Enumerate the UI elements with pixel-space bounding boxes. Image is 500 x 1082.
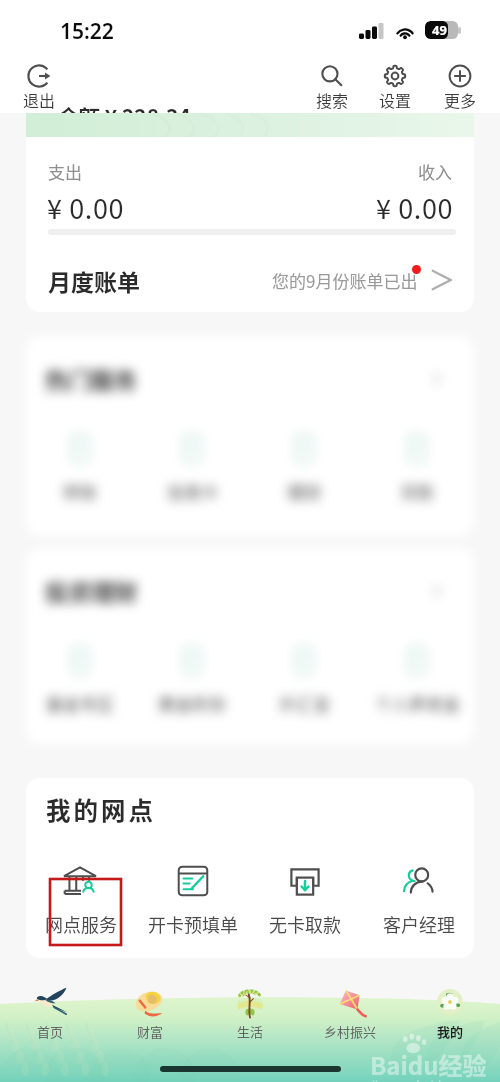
button[interactable]: 生活: [200, 985, 300, 1043]
staticText: 网点服务: [45, 911, 117, 937]
button[interactable]: 我的: [400, 985, 500, 1043]
button[interactable]: 客户经理: [369, 864, 469, 937]
staticText: 黄金积存: [158, 691, 226, 716]
staticText: ¥ 0.00: [47, 188, 125, 227]
staticText: 余额 ¥ 228.34: [58, 101, 191, 113]
staticText: 支出: [48, 159, 82, 184]
staticText: 基金专区: [46, 691, 114, 716]
button[interactable]: Exit: [13, 65, 65, 111]
staticText: 收入: [418, 159, 452, 184]
button[interactable]: 无卡取款: [255, 864, 355, 937]
staticText: 搜索: [316, 88, 349, 111]
staticText: 投资理财: [45, 574, 137, 607]
staticText: 月度账单: [48, 264, 140, 297]
staticText: 客户经理: [383, 911, 455, 937]
staticText: 开卡预填单: [148, 911, 238, 937]
button[interactable]: 开卡预填单: [143, 864, 243, 937]
staticText: 设置: [379, 88, 412, 111]
staticText: Baidu经验: [370, 1047, 487, 1082]
button[interactable]: Settings: [369, 65, 421, 111]
staticText: 我的网点: [46, 792, 156, 827]
staticText: 个人养老金: [375, 691, 460, 716]
button[interactable]: 网点服务: [31, 864, 131, 937]
button[interactable]: 财富: [100, 985, 200, 1043]
staticText: 乡村振兴: [324, 1022, 377, 1041]
button[interactable]: 月度账单: [26, 255, 474, 305]
staticText: 您的9月份账单已出: [272, 268, 418, 293]
button[interactable]: 首页: [0, 985, 100, 1043]
button[interactable]: 乡村振兴: [300, 985, 400, 1043]
staticText: 首页: [37, 1022, 64, 1041]
staticText: 信用卡: [167, 479, 218, 504]
staticText: 转账: [63, 479, 97, 504]
staticText: 退出: [23, 88, 56, 111]
staticText: 财富: [137, 1022, 164, 1041]
button[interactable]: Search: [306, 65, 358, 111]
staticText: 外汇宝: [279, 691, 330, 716]
staticText: 49: [432, 21, 447, 39]
staticText: 热门服务: [45, 362, 137, 395]
staticText: 贷款: [400, 479, 434, 504]
staticText: ¥ 0.00: [376, 188, 454, 227]
staticText: jingyan.baidu.com: [372, 1077, 476, 1082]
button[interactable]: More: [434, 65, 486, 111]
staticText: 我的: [437, 1022, 464, 1041]
staticText: 理财: [287, 479, 321, 504]
staticText: 无卡取款: [269, 911, 341, 937]
staticText: 15:22: [60, 17, 114, 46]
staticText: 生活: [237, 1022, 264, 1041]
staticText: 更多: [444, 88, 477, 111]
